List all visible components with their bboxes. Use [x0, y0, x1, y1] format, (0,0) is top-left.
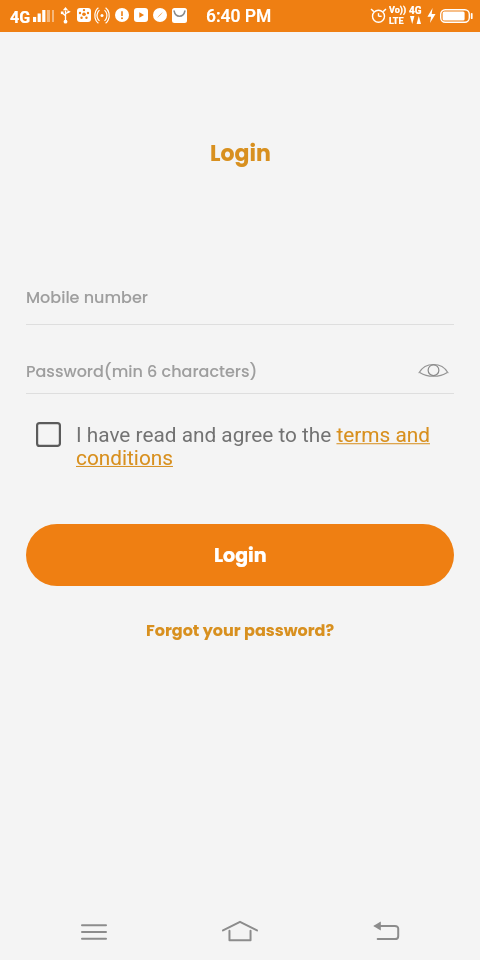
button[interactable]: Agree to terms and conditions [36, 422, 61, 447]
button[interactable]: Password(min 6 characters) [26, 357, 406, 393]
button[interactable]: I have read and agree to the terms and c… [76, 423, 434, 470]
staticText: 4G [409, 5, 422, 17]
staticText: Vo)) [389, 5, 407, 16]
button[interactable]: Mobile number [26, 284, 454, 324]
staticText: I have read and agree to the terms and c… [76, 423, 434, 470]
button[interactable]: Back [352, 910, 420, 954]
staticText: Login [214, 542, 267, 569]
staticText: Mobile number [26, 286, 148, 308]
staticText: LTE [389, 16, 404, 27]
button[interactable]: Forgot your password? [146, 619, 335, 641]
button[interactable]: Recent apps [60, 910, 128, 954]
staticText: 6:40 PM [206, 6, 272, 27]
button[interactable]: Home [206, 910, 274, 954]
staticText: Password(min 6 characters) [26, 360, 258, 382]
button[interactable]: Show password [414, 358, 453, 384]
staticText: Forgot your password? [146, 619, 335, 641]
staticText: Login [210, 138, 271, 168]
staticText: 4G [10, 8, 31, 27]
button[interactable]: Login [26, 524, 454, 586]
